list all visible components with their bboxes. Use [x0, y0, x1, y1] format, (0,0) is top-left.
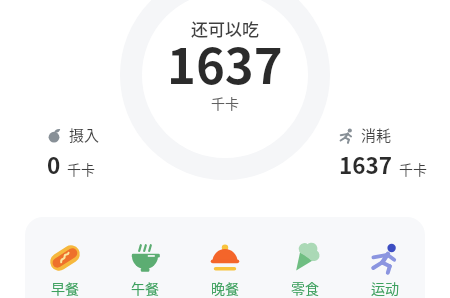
staticText: 千卡: [67, 159, 95, 179]
staticText: 晚餐: [211, 278, 239, 298]
staticText: 摄入: [69, 124, 100, 146]
button[interactable]: 运动: [345, 217, 425, 298]
staticText: 千卡: [211, 93, 239, 113]
staticText: 1637: [339, 148, 393, 181]
staticText: 1637: [167, 27, 283, 98]
staticText: 早餐: [51, 278, 79, 298]
staticText: 零食: [291, 278, 319, 298]
button[interactable]: 午餐: [105, 217, 185, 298]
staticText: 运动: [371, 278, 399, 298]
staticText: 消耗: [361, 124, 392, 146]
staticText: 午餐: [131, 278, 159, 298]
button[interactable]: 早餐: [25, 217, 105, 298]
staticText: 0: [47, 148, 61, 181]
button[interactable]: 零食: [265, 217, 345, 298]
staticText: 千卡: [399, 159, 427, 179]
staticText: 还可以吃: [191, 16, 259, 41]
button[interactable]: 晚餐: [185, 217, 265, 298]
